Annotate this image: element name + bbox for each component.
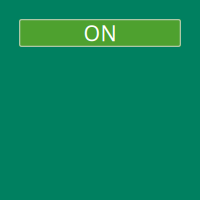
button[interactable]: ON [19, 19, 181, 47]
staticText: ON [83, 19, 116, 47]
